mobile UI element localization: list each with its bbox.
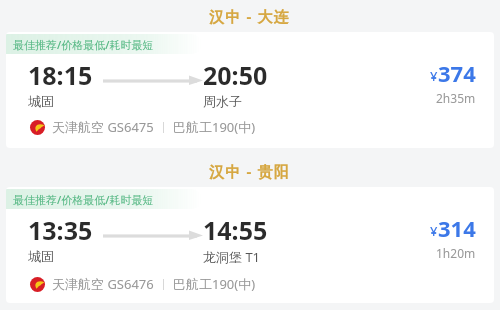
- staticText: 天津航空 GS6475: [52, 118, 154, 136]
- staticText: 最佳推荐/价格最低/耗时最短: [13, 37, 154, 52]
- staticText: 汉中 - 大连: [209, 6, 291, 26]
- staticText: 314: [438, 213, 476, 243]
- staticText: ¥: [430, 67, 438, 85]
- staticText: 汉中 - 贵阳: [209, 161, 291, 181]
- staticText: 1h20m: [436, 245, 476, 261]
- staticText: 天津航空 GS6476: [52, 275, 154, 293]
- other: 天津航空: [30, 277, 45, 292]
- button[interactable]: 最佳推荐/价格最低/耗时最短: [6, 187, 494, 303]
- staticText: 城固: [28, 93, 54, 109]
- button[interactable]: 最佳推荐/价格最低/耗时最短: [6, 32, 494, 148]
- staticText: 龙洞堡 T1: [203, 248, 261, 266]
- staticText: ¥: [430, 222, 438, 240]
- staticText: 城固: [28, 248, 54, 264]
- staticText: 13:35: [28, 213, 93, 247]
- staticText: 374: [438, 58, 476, 88]
- staticText: 2h35m: [436, 90, 476, 106]
- staticText: 最佳推荐/价格最低/耗时最短: [13, 192, 154, 207]
- staticText: 20:50: [203, 58, 268, 92]
- staticText: 18:15: [28, 58, 93, 92]
- staticText: 巴航工190(中): [173, 118, 256, 136]
- staticText: 14:55: [203, 213, 268, 247]
- other: 天津航空: [30, 120, 45, 135]
- staticText: 巴航工190(中): [173, 275, 256, 293]
- staticText: 周水子: [203, 93, 242, 109]
